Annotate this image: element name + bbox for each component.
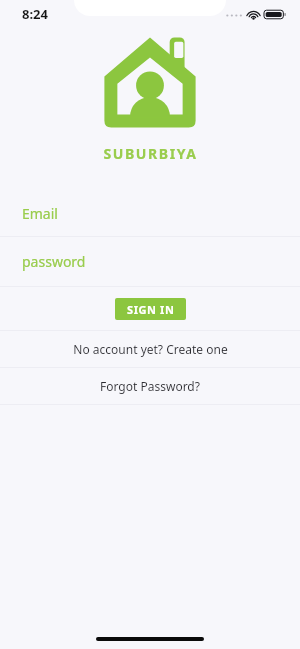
button[interactable]: SIGN IN	[115, 298, 186, 320]
staticText: 8:24	[22, 5, 48, 23]
staticText: Forgot Password?	[100, 378, 200, 394]
button[interactable]: password	[0, 237, 300, 286]
staticText: SIGN IN	[127, 302, 175, 317]
staticText: No account yet? Create one	[73, 341, 228, 357]
staticText: Email	[22, 204, 58, 223]
button[interactable]: No account yet? Create one	[0, 331, 300, 367]
button[interactable]: Forgot Password?	[0, 368, 300, 404]
button[interactable]: Email	[0, 191, 300, 236]
staticText: password	[22, 252, 86, 271]
staticText: SUBURBIYA	[103, 144, 198, 163]
